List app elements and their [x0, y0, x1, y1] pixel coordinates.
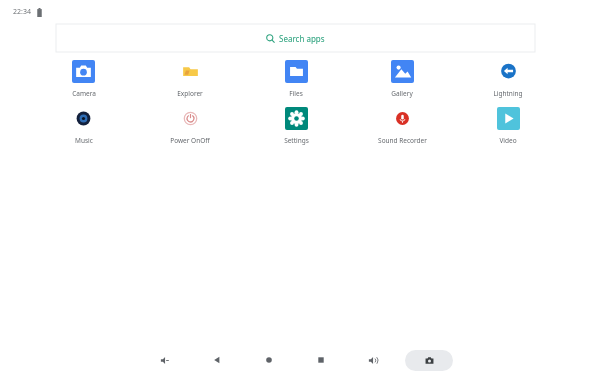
- button[interactable]: Explorer: [137, 60, 243, 98]
- staticText: Sound Recorder: [378, 136, 427, 145]
- staticText: Music: [75, 136, 93, 145]
- button[interactable]: Search apps: [56, 24, 535, 52]
- button[interactable]: Settings: [243, 107, 349, 145]
- staticText: Files: [289, 89, 303, 98]
- button[interactable]: Camera: [30, 60, 137, 98]
- button[interactable]: Volume up: [347, 343, 399, 377]
- staticText: Camera: [72, 89, 96, 98]
- button[interactable]: Home: [243, 343, 295, 377]
- staticText: 22:34: [13, 7, 31, 17]
- staticText: Video: [499, 136, 517, 145]
- staticText: Explorer: [177, 89, 203, 98]
- button[interactable]: Volume down: [139, 343, 191, 377]
- staticText: Gallery: [391, 89, 413, 98]
- button[interactable]: Lightning: [455, 60, 561, 98]
- button[interactable]: Sound Recorder: [349, 107, 455, 145]
- button[interactable]: Power OnOff: [137, 107, 243, 145]
- button[interactable]: Files: [243, 60, 349, 98]
- button[interactable]: Music: [30, 107, 137, 145]
- button[interactable]: Video: [455, 107, 561, 145]
- staticText: Search apps: [279, 33, 325, 44]
- button[interactable]: Gallery: [349, 60, 455, 98]
- staticText: Lightning: [493, 89, 523, 98]
- staticText: Power OnOff: [170, 136, 210, 145]
- button[interactable]: Back: [191, 343, 243, 377]
- button[interactable]: Recents: [295, 343, 347, 377]
- button[interactable]: Screenshot: [405, 350, 453, 371]
- staticText: Settings: [284, 136, 309, 145]
